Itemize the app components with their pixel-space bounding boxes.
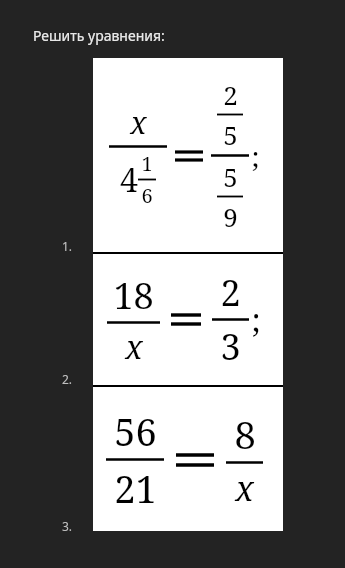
staticText: 9 bbox=[223, 199, 238, 234]
button[interactable]: 18 bbox=[93, 254, 283, 385]
staticText: 1. bbox=[62, 238, 73, 254]
staticText: 2. bbox=[62, 371, 73, 387]
staticText: ; bbox=[251, 137, 260, 175]
staticText: 3 bbox=[220, 322, 241, 371]
staticText: 2 bbox=[220, 268, 241, 317]
staticText: 5 bbox=[223, 159, 238, 194]
button[interactable]: Equations image bbox=[93, 58, 283, 531]
button[interactable]: x bbox=[93, 58, 283, 252]
staticText: x bbox=[130, 102, 147, 143]
staticText: 18 bbox=[113, 271, 154, 320]
button[interactable]: 56 bbox=[93, 387, 283, 531]
staticText: 1 bbox=[141, 150, 153, 177]
staticText: 8 bbox=[234, 408, 256, 460]
staticText: 56 bbox=[114, 405, 157, 457]
staticText: 3. bbox=[62, 518, 73, 534]
staticText: Решить уравнения: bbox=[33, 26, 165, 45]
staticText: x bbox=[125, 325, 143, 369]
staticText: 4 bbox=[120, 158, 138, 202]
staticText: 21 bbox=[114, 462, 157, 514]
staticText: 6 bbox=[141, 182, 153, 209]
staticText: x bbox=[235, 465, 254, 511]
staticText: 5 bbox=[223, 117, 238, 152]
staticText: 2 bbox=[223, 77, 238, 112]
staticText: ; bbox=[251, 298, 261, 342]
